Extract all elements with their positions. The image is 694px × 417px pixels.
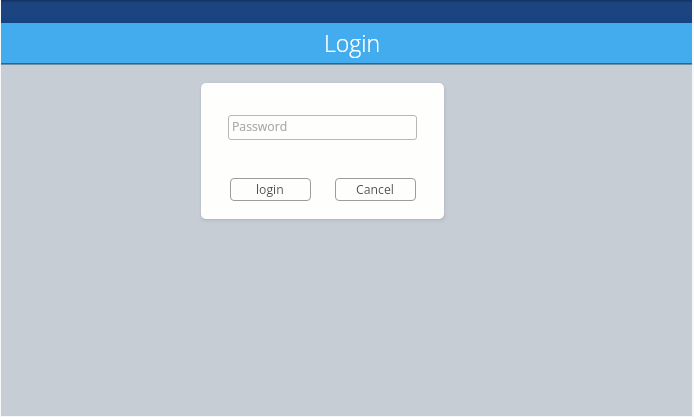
staticText: Password (232, 118, 288, 135)
staticText: Cancel (356, 181, 394, 198)
button[interactable]: Cancel (335, 178, 416, 201)
button[interactable]: login (230, 178, 311, 201)
staticText: login (256, 181, 284, 198)
button[interactable]: Password input field (228, 115, 417, 140)
staticText: Login (324, 27, 381, 58)
